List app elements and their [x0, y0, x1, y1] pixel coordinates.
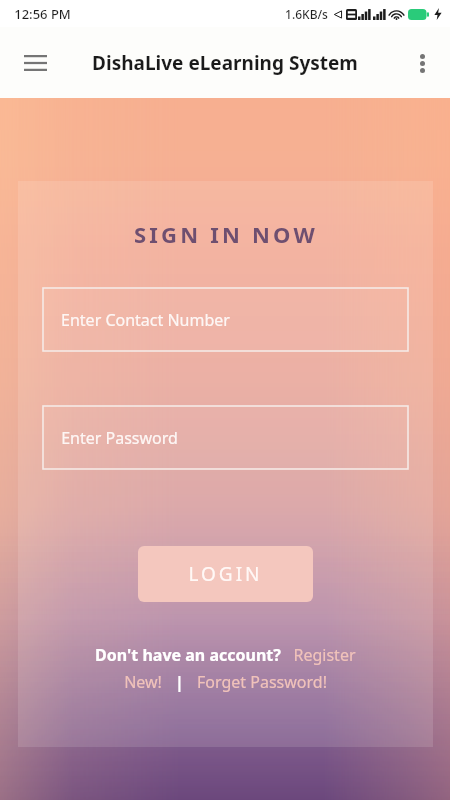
button[interactable]: LOGIN	[138, 546, 313, 602]
button[interactable]: Enter Password	[43, 406, 408, 469]
staticText: Register	[293, 644, 356, 666]
staticText: New!	[124, 671, 162, 693]
staticText: DishaLive eLearning System	[92, 50, 358, 76]
staticText: LOGIN	[188, 561, 263, 587]
staticText: |	[175, 671, 184, 693]
button[interactable]: New!	[124, 671, 162, 693]
button[interactable]: Enter Contact Number	[43, 288, 408, 351]
staticText: SIGN IN NOW	[134, 219, 318, 249]
button[interactable]: Open navigation menu	[13, 41, 57, 85]
staticText: Forget Password!	[197, 671, 327, 693]
staticText: Don't have an account?	[95, 644, 281, 666]
staticText: 1.6KB/s	[285, 6, 328, 22]
button[interactable]: Forget Password!	[197, 671, 327, 693]
staticText: 12:56 PM	[14, 5, 71, 23]
staticText: Enter Contact Number	[61, 309, 230, 331]
button[interactable]: More options	[400, 41, 444, 85]
staticText: Enter Password	[61, 427, 178, 449]
button[interactable]: Register	[293, 644, 356, 666]
